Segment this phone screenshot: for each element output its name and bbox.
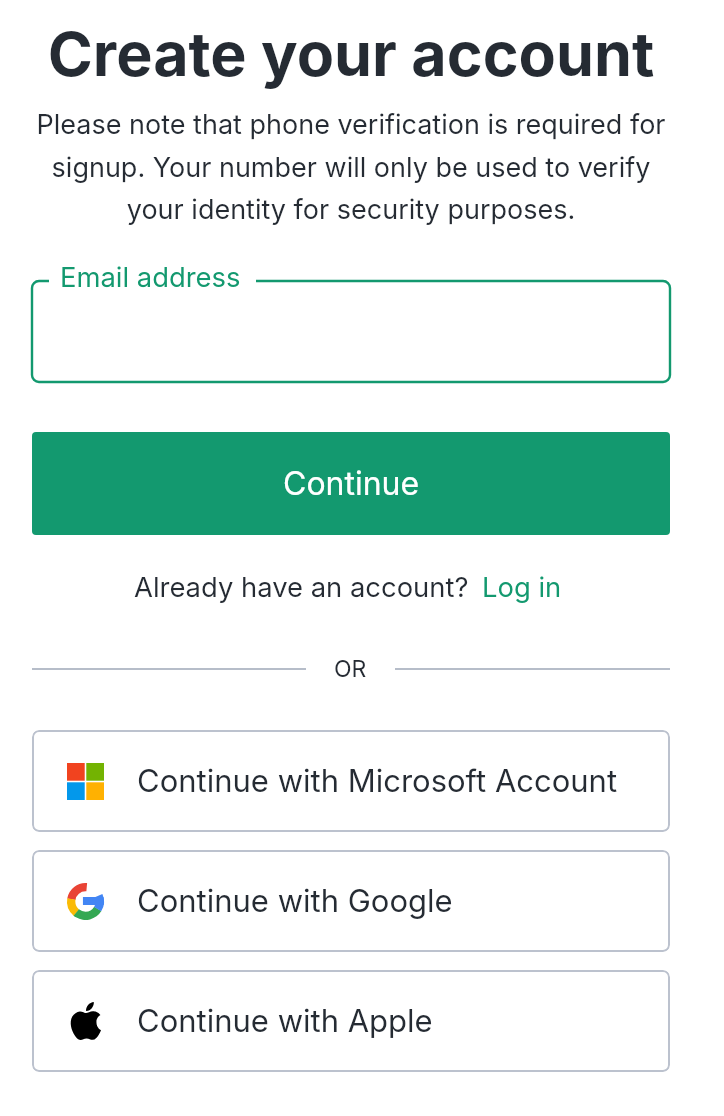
staticText: Log in (482, 570, 562, 603)
staticText: OR (334, 655, 367, 683)
staticText: Create your account (0, 17, 702, 91)
staticText: Continue (283, 464, 420, 503)
staticText: Continue with Apple (137, 1002, 433, 1040)
staticText: Already have an account? (134, 570, 469, 603)
button[interactable]: Microsoft (32, 730, 670, 832)
staticText: Continue with Microsoft Account (137, 762, 618, 800)
button[interactable]: Apple (32, 970, 670, 1072)
other: Apple (66, 1002, 104, 1040)
other: Microsoft (66, 762, 104, 800)
staticText: Continue with Google (137, 882, 453, 920)
button[interactable]: Google (32, 850, 670, 952)
button[interactable]: Log in (482, 570, 562, 603)
button[interactable]: Continue (32, 432, 670, 535)
button[interactable]: Email address (32, 266, 670, 382)
staticText: Please note that phone verification is r… (32, 108, 670, 225)
staticText: Email address (60, 260, 241, 293)
other: Google (66, 882, 104, 920)
